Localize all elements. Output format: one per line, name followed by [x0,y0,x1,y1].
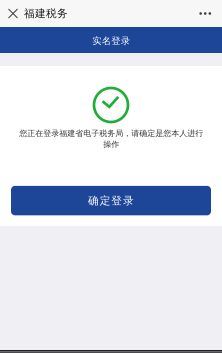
staticText: 福建税务 [24,7,68,20]
button[interactable]: More options [190,0,222,27]
staticText: 实名登录 [92,35,130,47]
button[interactable]: 确定登录 [11,186,211,215]
staticText: 确定登录 [88,194,134,207]
button[interactable]: Close [0,0,24,27]
staticText: 您正在登录福建省电子税务局，请确定是您本人进行操作 [19,128,203,149]
